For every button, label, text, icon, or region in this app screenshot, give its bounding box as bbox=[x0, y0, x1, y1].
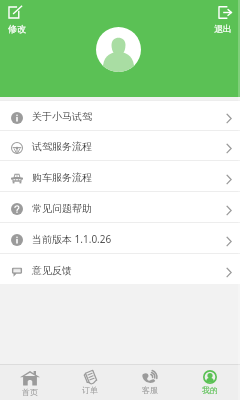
staticText: 意见反馈 bbox=[32, 264, 72, 277]
staticText: 我的 bbox=[202, 385, 218, 395]
staticText: 关于小马试驾 bbox=[32, 110, 92, 123]
button[interactable]: 试驾服务流程 bbox=[0, 131, 240, 160]
button[interactable]: 我的 bbox=[180, 365, 240, 400]
button[interactable]: 客服 bbox=[120, 365, 180, 400]
staticText: 常见问题帮助 bbox=[32, 202, 92, 215]
staticText: 首页 bbox=[22, 387, 38, 397]
button[interactable]: 关于小马试驾 bbox=[0, 101, 240, 130]
button[interactable]: 常见问题帮助 bbox=[0, 192, 240, 222]
button[interactable]: 购车服务流程 bbox=[0, 161, 240, 191]
staticText: 修改 bbox=[8, 23, 26, 34]
staticText: 试驾服务流程 bbox=[32, 140, 92, 153]
button[interactable]: 意见反馈 bbox=[0, 254, 240, 284]
staticText: 客服 bbox=[142, 385, 158, 395]
button[interactable]: 修改 bbox=[3, 2, 30, 32]
button[interactable]: Profile photo bbox=[96, 27, 141, 72]
button[interactable]: 退出 bbox=[210, 2, 237, 32]
staticText: 当前版本 1.1.0.26 bbox=[32, 232, 112, 246]
staticText: 购车服务流程 bbox=[32, 171, 92, 184]
button[interactable]: 当前版本 1.1.0.26 bbox=[0, 223, 240, 253]
staticText: 订单 bbox=[82, 385, 98, 395]
button[interactable]: 订单 bbox=[60, 365, 120, 400]
staticText: 退出 bbox=[214, 23, 232, 34]
button[interactable]: 首页 bbox=[0, 365, 60, 400]
